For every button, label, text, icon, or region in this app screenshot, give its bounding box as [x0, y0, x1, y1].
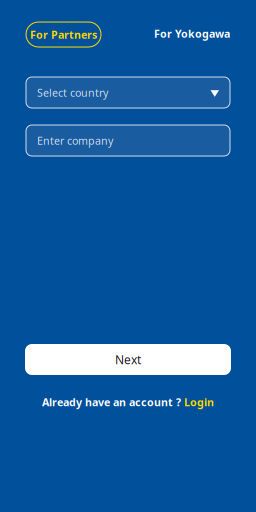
button[interactable]: Enter company	[26, 125, 230, 156]
button[interactable]: For Yokogawa	[154, 22, 230, 47]
button[interactable]: For Partners	[26, 22, 101, 47]
staticText: Select country	[37, 85, 108, 100]
staticText: Next	[115, 351, 141, 367]
staticText: For Yokogawa	[154, 26, 230, 41]
button[interactable]: Select country	[26, 77, 230, 108]
staticText: For Partners	[30, 27, 97, 42]
button[interactable]: Login	[184, 395, 214, 409]
button[interactable]: Next	[25, 344, 231, 375]
staticText: Enter company	[37, 133, 113, 148]
staticText: Login	[184, 395, 214, 409]
staticText: Already have an account ?	[42, 395, 181, 409]
